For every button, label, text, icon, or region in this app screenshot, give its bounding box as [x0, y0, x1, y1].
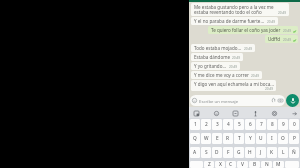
button[interactable]: Todo estaba mojado... [191, 44, 255, 52]
button[interactable]: Y yo gritando... [191, 62, 240, 70]
staticText: O [281, 135, 285, 142]
staticText: C [229, 161, 233, 168]
staticText: Udffd [268, 36, 281, 42]
staticText: 20:49 [278, 11, 287, 15]
button[interactable]: A [190, 147, 200, 158]
staticText: Ñ [292, 149, 296, 156]
staticText: Todo estaba mojado... [194, 45, 242, 51]
staticText: 20:49 [267, 20, 276, 24]
staticText: U [259, 135, 263, 142]
button[interactable]: O [278, 133, 288, 144]
button[interactable]: H [245, 147, 255, 158]
staticText: 20:49 [229, 65, 238, 69]
staticText: G [237, 149, 241, 156]
button[interactable]: C [226, 161, 236, 168]
staticText: Y digo ven aquí echamela a mi boca... [194, 81, 274, 87]
staticText: M [276, 161, 281, 168]
button[interactable]: U [256, 133, 266, 144]
staticText: V [241, 161, 244, 168]
button[interactable]: Escribe un mensaje [190, 95, 285, 106]
button[interactable]: 2 [201, 119, 211, 130]
staticText: 20:49 [283, 29, 292, 33]
button[interactable]: Z [204, 161, 214, 168]
staticText: 2 [205, 121, 208, 128]
button[interactable]: D [212, 147, 222, 158]
staticText: Y [249, 135, 252, 142]
staticText: Estaba dándome [194, 54, 230, 60]
button[interactable]: W [201, 133, 211, 144]
button[interactable]: Y el no paraba de darme fuerte... [191, 17, 278, 25]
button[interactable]: R [223, 133, 233, 144]
button[interactable]: Te quiero follar el coño yas joder [208, 26, 298, 34]
button[interactable]: P [289, 133, 299, 144]
staticText: Q [193, 135, 197, 142]
button[interactable]: Keyboard tool 0 [193, 110, 199, 116]
button[interactable]: Ñ [289, 147, 299, 158]
button[interactable]: I [267, 133, 277, 144]
button[interactable]: J [256, 147, 266, 158]
button[interactable]: S [201, 147, 211, 158]
button[interactable]: T [234, 133, 244, 144]
staticText: Me estaba gustando pero a la vez me esta… [194, 4, 276, 15]
staticText: D [215, 149, 219, 156]
button[interactable]: Keyboard tool 4 [271, 110, 277, 116]
button[interactable]: E [212, 133, 222, 144]
staticText: 6 [249, 121, 252, 128]
staticText: W [204, 135, 209, 142]
staticText: H [248, 149, 252, 156]
staticText: Y el no paraba de darme fuerte... [194, 18, 265, 24]
staticText: 20:49 [265, 87, 274, 90]
staticText: 8 [271, 121, 274, 128]
button[interactable]: F [223, 147, 233, 158]
button[interactable]: N [261, 161, 272, 168]
staticText: 5 [238, 121, 241, 128]
button[interactable]: Keyboard tool 3 [252, 110, 258, 116]
button[interactable]: 6 [245, 119, 255, 130]
button[interactable]: 9 [278, 119, 288, 130]
button[interactable]: Me estaba gustando pero a la vez me esta… [191, 3, 289, 16]
button[interactable]: 1 [190, 119, 200, 130]
button[interactable]: Udffd [265, 35, 298, 43]
button[interactable]: 0 [289, 119, 299, 130]
button[interactable]: Estaba dándome [191, 53, 243, 61]
button[interactable]: Q [190, 133, 200, 144]
staticText: X [219, 161, 222, 168]
button[interactable]: B [249, 161, 260, 168]
button[interactable]: X [215, 161, 225, 168]
staticText: N [265, 161, 269, 168]
staticText: 4 [227, 121, 230, 128]
staticText: 20:49 [251, 74, 260, 78]
button[interactable]: Record voice message [286, 94, 299, 107]
button[interactable]: 4 [223, 119, 233, 130]
button[interactable]: Y [245, 133, 255, 144]
staticText: 1 [194, 121, 197, 128]
button[interactable]: M [273, 161, 284, 168]
button[interactable]: Keyboard tool 2 [232, 110, 238, 116]
button[interactable]: L [278, 147, 288, 158]
staticText: J [260, 149, 262, 156]
staticText: Z [208, 161, 211, 168]
staticText: F [227, 149, 230, 156]
button[interactable]: Keyboard tool 1 [213, 110, 219, 116]
button[interactable]: V [237, 161, 248, 168]
button[interactable]: Y me dice me voy a correr [191, 71, 262, 79]
button[interactable]: K [267, 147, 277, 158]
staticText: E [216, 135, 219, 142]
button[interactable]: 3 [212, 119, 222, 130]
staticText: K [270, 149, 274, 156]
staticText: 9 [282, 121, 285, 128]
button[interactable]: 8 [267, 119, 277, 130]
staticText: P [293, 135, 296, 142]
button[interactable]: Y digo ven aquí echamela a mi boca... [191, 80, 276, 91]
staticText: A [193, 149, 197, 156]
staticText: Y yo gritando... [194, 63, 227, 69]
button[interactable]: 5 [234, 119, 244, 130]
button[interactable]: G [234, 147, 244, 158]
button[interactable]: 7 [256, 119, 266, 130]
staticText: T [238, 135, 241, 142]
staticText: 7 [260, 121, 263, 128]
staticText: 3 [216, 121, 219, 128]
button[interactable]: Keyboard tool 5 [291, 110, 297, 116]
